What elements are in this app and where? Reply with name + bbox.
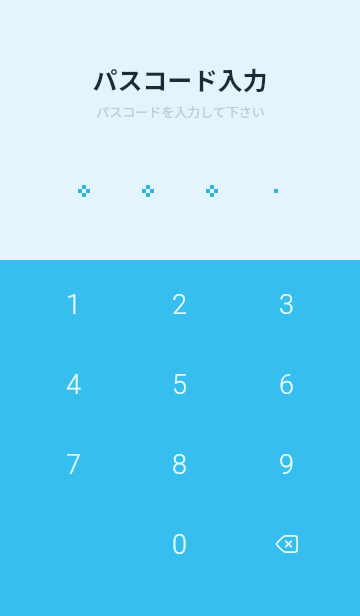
- staticText: 0: [172, 529, 187, 561]
- button[interactable]: 6: [233, 345, 340, 425]
- button[interactable]: 3: [233, 265, 340, 345]
- button[interactable]: 0: [126, 505, 233, 585]
- staticText: 3: [279, 289, 294, 321]
- button[interactable]: 8: [126, 425, 233, 505]
- button[interactable]: 7: [20, 425, 126, 505]
- button[interactable]: Delete: [233, 505, 340, 585]
- staticText: 7: [66, 449, 81, 481]
- staticText: 9: [279, 449, 294, 481]
- staticText: パスコードを入力して下さい: [96, 102, 265, 121]
- staticText: 1: [66, 289, 81, 321]
- button[interactable]: 1: [20, 265, 126, 345]
- staticText: 2: [172, 289, 187, 321]
- button[interactable]: 4: [20, 345, 126, 425]
- staticText: 4: [66, 369, 81, 401]
- staticText: 6: [279, 369, 294, 401]
- staticText: 5: [172, 369, 187, 401]
- button[interactable]: 9: [233, 425, 340, 505]
- staticText: 8: [172, 449, 187, 481]
- staticText: パスコード入力: [92, 61, 268, 97]
- button[interactable]: 2: [126, 265, 233, 345]
- button[interactable]: 5: [126, 345, 233, 425]
